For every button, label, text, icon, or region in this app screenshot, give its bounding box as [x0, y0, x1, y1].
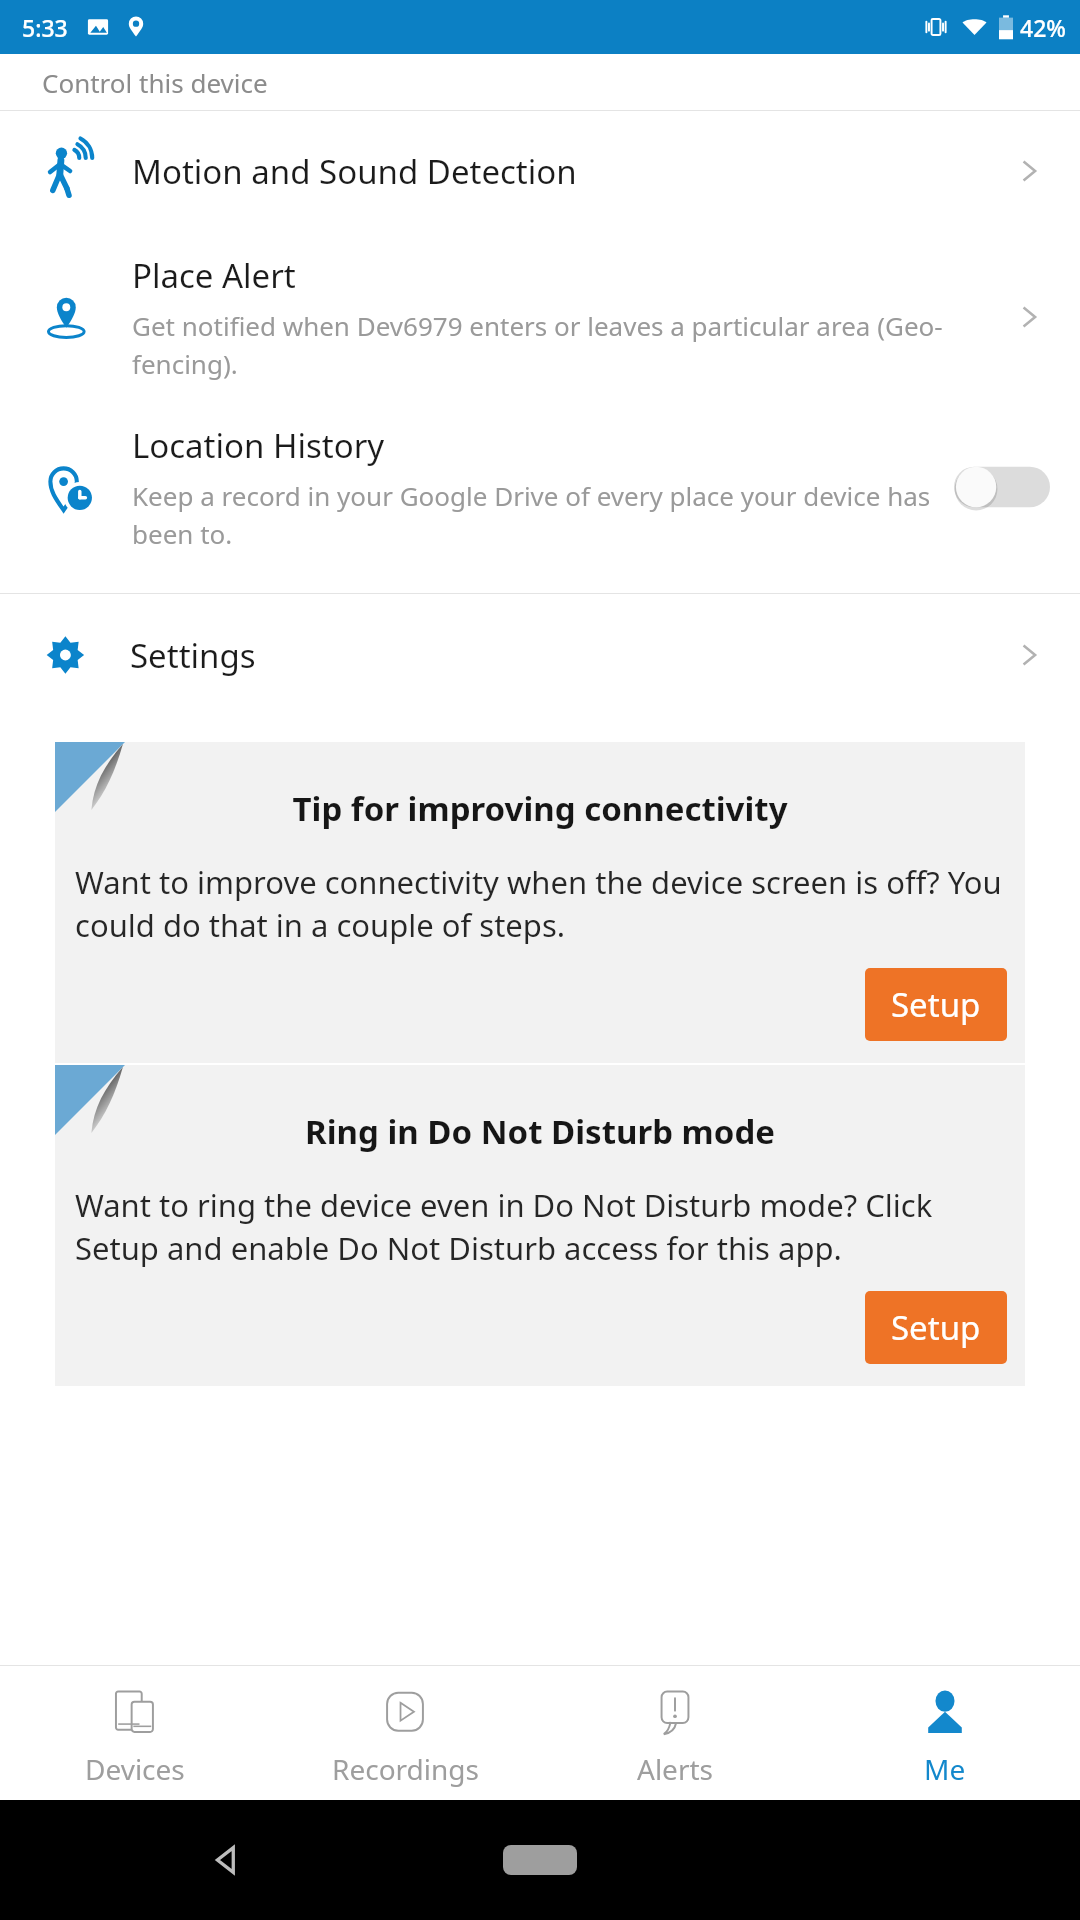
staticText: Ring in Do Not Disturb mode [81, 1109, 999, 1154]
staticText: 5:33 [22, 12, 68, 43]
other: Open [1012, 638, 1046, 672]
staticText: Want to improve connectivity when the de… [75, 861, 1011, 946]
button[interactable]: Alerts [540, 1666, 810, 1800]
staticText: Get notified when Dev6979 enters or leav… [132, 308, 998, 381]
staticText: Want to ring the device even in Do Not D… [75, 1184, 1011, 1269]
staticText: Alerts [637, 1750, 713, 1788]
staticText: Recordings [332, 1750, 479, 1788]
staticText: Me [924, 1750, 966, 1788]
button[interactable]: Recordings [270, 1666, 540, 1800]
button[interactable]: Devices [0, 1666, 270, 1800]
button[interactable]: Setup [865, 1291, 1007, 1364]
staticText: Devices [85, 1750, 185, 1788]
staticText: Setup [891, 982, 981, 1027]
other: Open [1012, 154, 1046, 188]
staticText: Settings [130, 633, 256, 678]
button[interactable]: Settings [0, 594, 1080, 716]
other: Open [1012, 300, 1046, 334]
button[interactable]: Setup [865, 968, 1007, 1041]
button[interactable]: Location History [0, 403, 1080, 575]
staticText: Control this device [42, 65, 268, 100]
button[interactable]: Motion and Sound Detection [0, 111, 1080, 231]
staticText: Motion and Sound Detection [132, 149, 577, 194]
staticText: Keep a record in your Google Drive of ev… [132, 478, 938, 551]
button[interactable]: Back [206, 1838, 250, 1882]
staticText: Location History [132, 423, 385, 468]
staticText: 42% [1020, 12, 1066, 43]
button[interactable]: Home [503, 1845, 577, 1875]
staticText: Setup [891, 1305, 981, 1350]
button[interactable]: Me [810, 1666, 1080, 1800]
staticText: Place Alert [132, 253, 296, 298]
staticText: Tip for improving connectivity [81, 786, 999, 831]
button[interactable]: Tip for improving connectivity [55, 742, 1025, 1063]
button[interactable]: Ring in Do Not Disturb mode [55, 1065, 1025, 1386]
button[interactable]: Place Alert [0, 231, 1080, 403]
button[interactable]: Location History toggle [954, 459, 1050, 515]
